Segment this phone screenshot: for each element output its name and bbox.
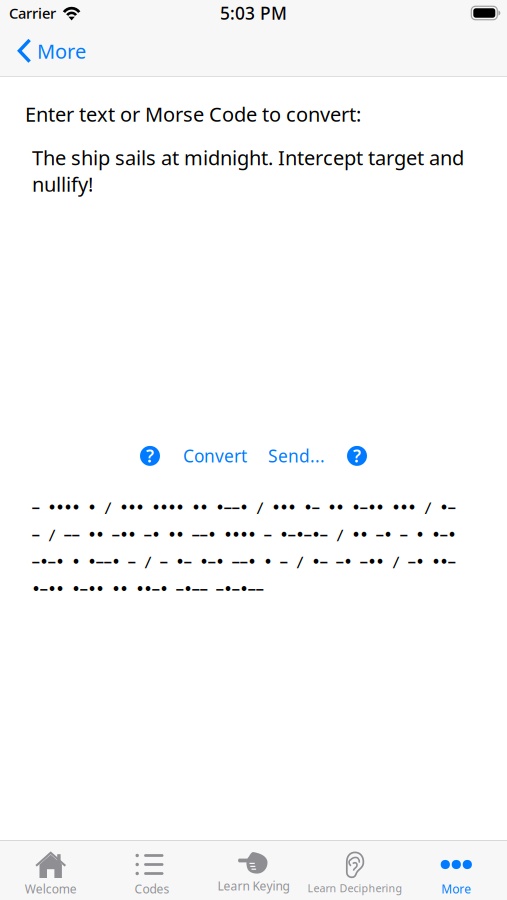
button[interactable]: Send...	[260, 437, 333, 474]
staticText: 5:03 PM	[220, 1, 287, 24]
staticText: Welcome	[25, 881, 77, 897]
button[interactable]: Learn Keying	[203, 841, 304, 900]
button[interactable]: Convert	[175, 437, 255, 474]
staticText: Send...	[268, 444, 325, 467]
staticText: Convert	[183, 444, 247, 467]
button[interactable]: More	[406, 841, 507, 900]
staticText: ?	[353, 444, 361, 467]
staticText: More	[37, 38, 86, 64]
button[interactable]: Help	[342, 441, 372, 471]
staticText: Enter text or Morse Code to convert:	[25, 101, 361, 127]
button[interactable]: More	[0, 29, 96, 73]
button[interactable]: Learn Deciphering	[304, 841, 406, 900]
button[interactable]: Welcome	[0, 841, 101, 900]
staticText: ?	[146, 444, 154, 467]
staticText: Carrier	[9, 3, 56, 23]
staticText: Learn Deciphering	[307, 881, 402, 895]
button[interactable]: Codes	[101, 841, 203, 900]
staticText: More	[441, 881, 471, 897]
staticText: Learn Keying	[217, 878, 289, 894]
staticText: Codes	[135, 881, 170, 897]
button[interactable]: Help	[135, 441, 165, 471]
staticText: The ship sails at midnight. Intercept ta…	[32, 144, 464, 197]
staticText: − •••• • / ••• •••• •• •−−• / ••• •− •• …	[32, 500, 456, 597]
